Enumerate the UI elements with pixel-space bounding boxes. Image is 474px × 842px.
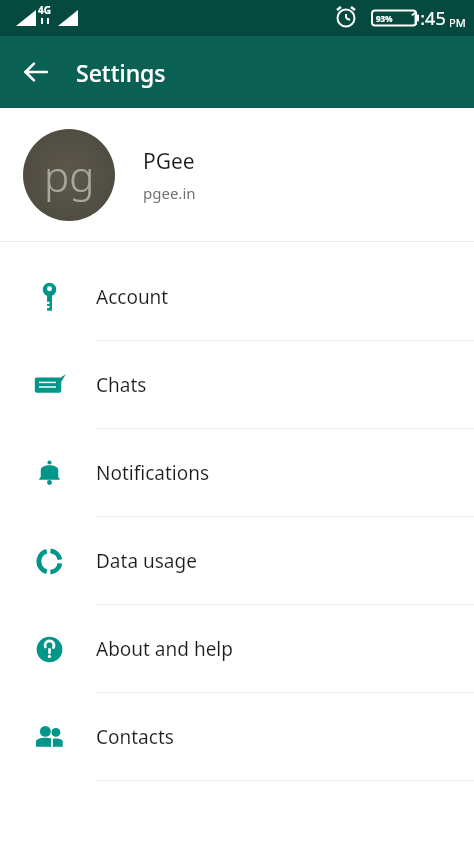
staticText: Contacts (96, 724, 174, 750)
staticText: 93% (376, 13, 393, 24)
staticText: About and help (96, 636, 233, 662)
staticText: PGee (143, 147, 195, 176)
staticText: PM (449, 15, 466, 30)
staticText: pgee.in (143, 183, 196, 203)
button[interactable]: About and help (0, 605, 474, 693)
staticText: Chats (96, 372, 147, 398)
button[interactable]: Account (0, 253, 474, 341)
button[interactable]: pg (0, 108, 474, 241)
staticText: Settings (76, 57, 166, 88)
staticText: 1:45 (410, 6, 446, 31)
button[interactable]: Contacts (0, 693, 474, 781)
button[interactable]: Chats (0, 341, 474, 429)
staticText: Account (96, 284, 169, 310)
button[interactable]: Back (12, 48, 60, 96)
button[interactable]: Notifications (0, 429, 474, 517)
staticText: 4G (38, 3, 51, 17)
staticText: pg (44, 147, 95, 204)
staticText: Notifications (96, 460, 210, 486)
staticText: Data usage (96, 548, 197, 574)
button[interactable]: Data usage (0, 517, 474, 605)
